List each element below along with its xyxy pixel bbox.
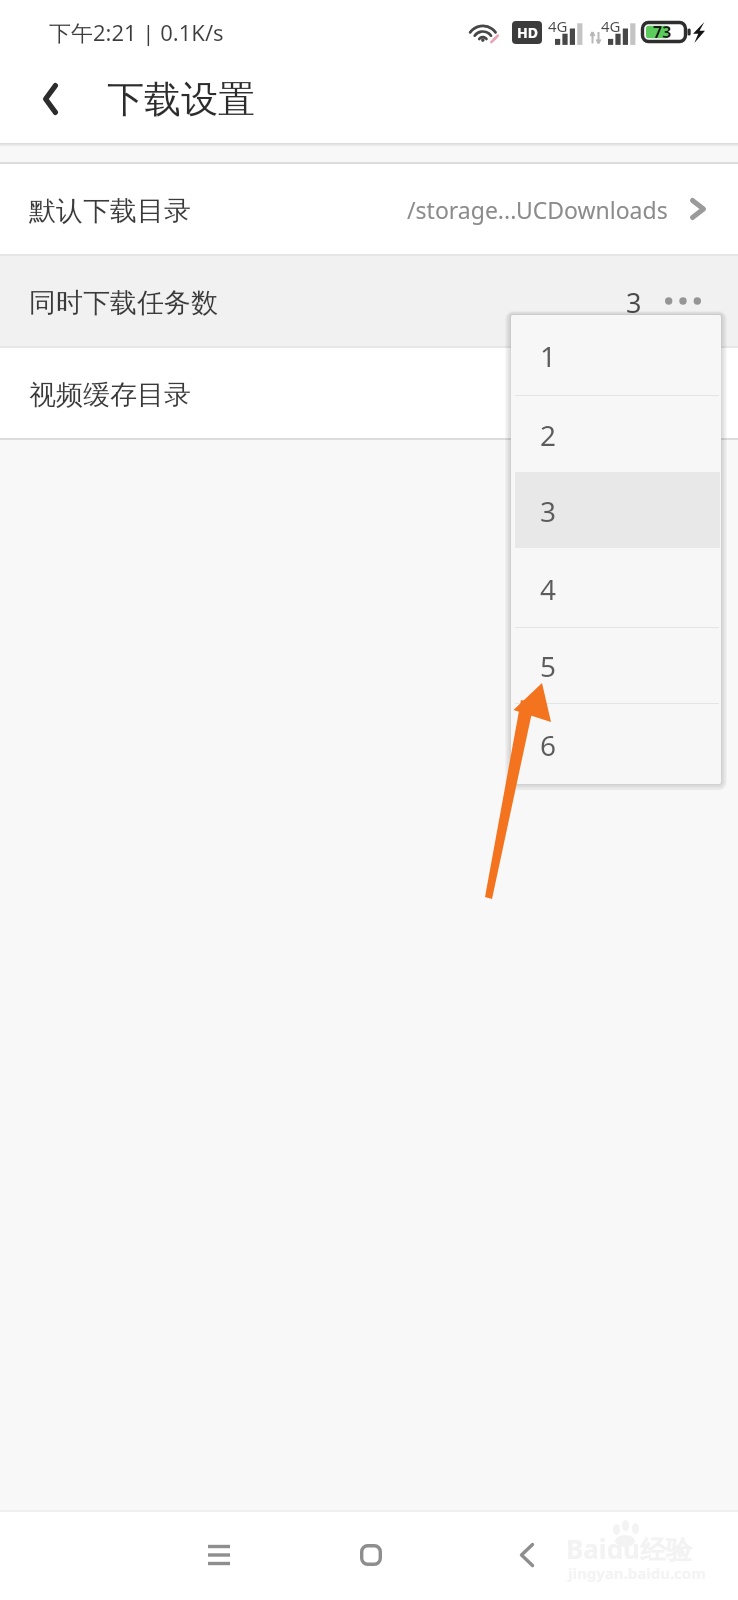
- button[interactable]: Home: [326, 1510, 416, 1600]
- button[interactable]: 4: [511, 548, 721, 627]
- button[interactable]: More options: [659, 273, 707, 329]
- staticText: HD: [517, 23, 538, 42]
- staticText: 5: [540, 647, 557, 685]
- staticText: 6: [540, 726, 557, 764]
- staticText: 4G: [601, 16, 621, 36]
- button[interactable]: 5: [511, 627, 721, 703]
- button[interactable]: 默认下载目录: [0, 164, 738, 254]
- button[interactable]: 视频缓存目录: [0, 348, 738, 438]
- staticText: Baidu经验: [566, 1531, 692, 1567]
- staticText: 3: [626, 284, 642, 321]
- staticText: 2: [540, 416, 557, 454]
- button[interactable]: 2: [511, 395, 721, 472]
- button[interactable]: 1: [511, 315, 721, 395]
- button[interactable]: Back: [17, 59, 83, 138]
- button[interactable]: 同时下载任务数: [0, 256, 738, 346]
- button[interactable]: 6: [511, 703, 721, 784]
- staticText: 4: [540, 570, 557, 608]
- staticText: 1: [540, 337, 557, 375]
- button[interactable]: 3: [511, 472, 721, 548]
- staticText: 默认下载目录: [29, 194, 191, 228]
- staticText: jingyan.baidu.com: [568, 1563, 706, 1583]
- button[interactable]: Menu: [174, 1510, 264, 1600]
- staticText: 下载设置: [107, 76, 255, 123]
- staticText: 3: [540, 492, 557, 530]
- staticText: 下午2:21 | 0.1K/s: [49, 17, 224, 47]
- staticText: 同时下载任务数: [29, 286, 218, 320]
- staticText: 4G: [548, 16, 568, 36]
- staticText: 73: [653, 21, 672, 43]
- button[interactable]: Back: [482, 1510, 572, 1600]
- staticText: 视频缓存目录: [29, 378, 191, 412]
- staticText: /storage...UCDownloads: [407, 194, 668, 225]
